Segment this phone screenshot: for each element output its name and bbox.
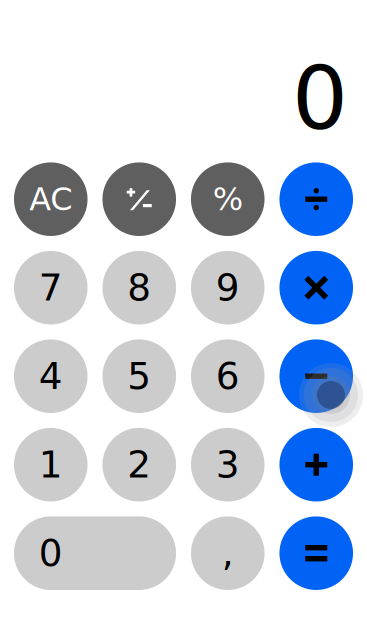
staticText: 3 xyxy=(216,443,240,486)
button[interactable]: Divide xyxy=(279,162,353,236)
staticText: % xyxy=(213,181,243,218)
staticText: AC xyxy=(29,181,72,218)
button[interactable]: % xyxy=(191,162,265,236)
staticText: 0 xyxy=(39,531,63,575)
button[interactable]: AC xyxy=(14,162,88,236)
button[interactable]: 4 xyxy=(14,339,88,413)
button[interactable]: 2 xyxy=(102,428,176,501)
button[interactable]: , xyxy=(191,516,265,590)
staticText: 6 xyxy=(216,354,240,398)
staticText: 7 xyxy=(39,266,63,309)
button[interactable]: Equals xyxy=(279,516,353,590)
button[interactable]: 8 xyxy=(102,251,176,324)
button[interactable]: 7 xyxy=(14,251,88,324)
staticText: 2 xyxy=(127,443,151,486)
button[interactable]: 0 xyxy=(14,516,176,590)
staticText: 0 xyxy=(292,47,348,149)
staticText: 5 xyxy=(127,354,151,398)
button[interactable]: 5 xyxy=(102,339,176,413)
button[interactable]: 1 xyxy=(14,428,88,501)
button[interactable]: Plus xyxy=(279,428,353,501)
button[interactable]: 3 xyxy=(191,428,265,501)
button[interactable]: 9 xyxy=(191,251,265,324)
button[interactable]: 6 xyxy=(191,339,265,413)
staticText: 9 xyxy=(216,266,240,309)
button[interactable]: Minus xyxy=(279,339,353,413)
staticText: 8 xyxy=(127,266,151,309)
button[interactable]: Toggle sign xyxy=(102,162,176,236)
staticText: , xyxy=(222,531,234,575)
staticText: 1 xyxy=(39,443,63,486)
button[interactable]: Multiply xyxy=(279,251,353,324)
staticText: 4 xyxy=(39,354,63,398)
